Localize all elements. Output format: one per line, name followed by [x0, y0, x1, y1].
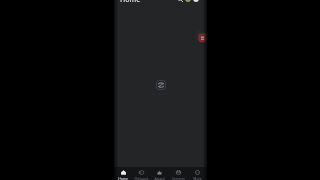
staticText: Award: [154, 176, 165, 180]
staticText: More: [193, 176, 202, 180]
button[interactable]: Discount: [132, 167, 150, 180]
button[interactable]: Profile: [192, 0, 200, 3]
staticText: Home: [118, 176, 128, 180]
staticText: Discount: [134, 176, 149, 180]
staticText: Services: [172, 176, 185, 180]
button[interactable]: Award: [150, 167, 169, 180]
button[interactable]: Services: [169, 167, 188, 180]
button[interactable]: Rewards: [184, 0, 192, 3]
button[interactable]: Search: [176, 0, 184, 3]
button[interactable]: More: [188, 167, 207, 180]
button[interactable]: Promotion: [197, 31, 207, 44]
button[interactable]: Home: [114, 167, 132, 180]
staticText: Home: [120, 0, 141, 4]
